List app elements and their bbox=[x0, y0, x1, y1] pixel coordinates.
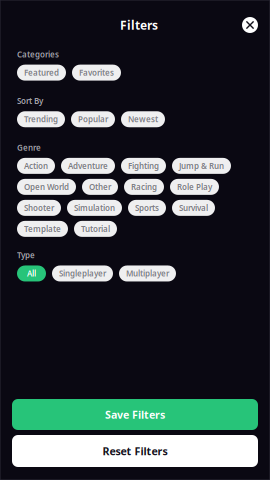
staticText: Favorites bbox=[79, 67, 114, 78]
staticText: Open World bbox=[24, 182, 69, 192]
button[interactable]: Newest bbox=[121, 111, 165, 127]
button[interactable]: Fighting bbox=[121, 158, 166, 174]
button[interactable]: Featured bbox=[17, 65, 66, 81]
staticText: Racing bbox=[131, 182, 157, 192]
button[interactable]: Open World bbox=[17, 179, 76, 195]
staticText: Tutorial bbox=[81, 224, 110, 234]
button[interactable]: Template bbox=[17, 221, 68, 237]
staticText: Role Play bbox=[177, 182, 212, 192]
button[interactable]: Trending bbox=[17, 111, 65, 127]
staticText: Singleplayer bbox=[59, 268, 106, 279]
staticText: Sports bbox=[135, 203, 159, 213]
button[interactable]: Close bbox=[239, 14, 261, 36]
staticText: Save Filters bbox=[105, 407, 165, 422]
staticText: Genre bbox=[17, 142, 41, 153]
button[interactable]: Singleplayer bbox=[52, 265, 113, 281]
staticText: Adventure bbox=[68, 161, 108, 171]
staticText: Other bbox=[89, 182, 111, 192]
staticText: Action bbox=[24, 161, 48, 171]
staticText: Multiplayer bbox=[126, 268, 169, 279]
staticText: Fighting bbox=[128, 161, 159, 171]
button[interactable]: Survival bbox=[172, 200, 215, 216]
staticText: Jump & Run bbox=[179, 161, 224, 171]
button[interactable]: Other bbox=[82, 179, 118, 195]
staticText: Sort By bbox=[17, 96, 43, 106]
staticText: Reset Filters bbox=[102, 444, 167, 458]
button[interactable]: Tutorial bbox=[74, 221, 117, 237]
staticText: Categories bbox=[17, 49, 59, 60]
button[interactable]: Simulation bbox=[67, 200, 122, 216]
staticText: Newest bbox=[128, 114, 158, 124]
staticText: Type bbox=[17, 250, 35, 260]
button[interactable]: Favorites bbox=[72, 65, 121, 81]
staticText: Filters bbox=[120, 17, 158, 33]
button[interactable]: Reset Filters bbox=[12, 435, 258, 467]
button[interactable]: Jump & Run bbox=[172, 158, 231, 174]
staticText: Featured bbox=[24, 67, 59, 78]
button[interactable]: Multiplayer bbox=[119, 265, 176, 281]
staticText: Simulation bbox=[74, 203, 115, 213]
button[interactable]: All bbox=[17, 265, 46, 281]
button[interactable]: Adventure bbox=[61, 158, 115, 174]
button[interactable]: Racing bbox=[124, 179, 164, 195]
button[interactable]: Action bbox=[17, 158, 55, 174]
staticText: Popular bbox=[78, 114, 108, 124]
button[interactable]: Save Filters bbox=[12, 399, 258, 430]
staticText: Template bbox=[24, 224, 61, 234]
button[interactable]: Shooter bbox=[17, 200, 61, 216]
staticText: Shooter bbox=[24, 203, 54, 213]
staticText: All bbox=[27, 268, 36, 279]
staticText: Trending bbox=[24, 114, 58, 124]
staticText: Survival bbox=[179, 203, 208, 213]
button[interactable]: Sports bbox=[128, 200, 166, 216]
button[interactable]: Popular bbox=[71, 111, 115, 127]
button[interactable]: Role Play bbox=[170, 179, 219, 195]
